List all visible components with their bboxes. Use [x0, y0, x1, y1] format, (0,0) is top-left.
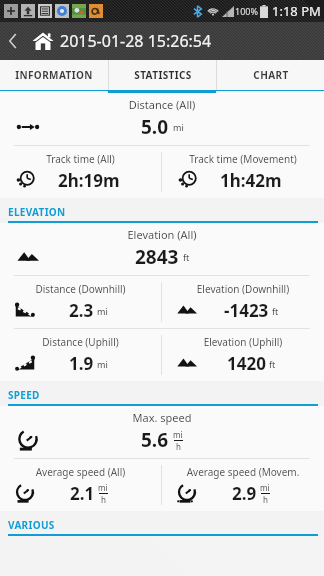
staticText: Distance (Uphill)	[0, 335, 161, 349]
staticText: mi	[260, 482, 270, 493]
button[interactable]: Elevation (Downhill)	[162, 276, 324, 328]
button[interactable]: Elevation (All)	[0, 223, 324, 275]
staticText: ft	[183, 251, 190, 263]
staticText: 2843	[135, 244, 179, 270]
staticText: ft	[272, 305, 279, 317]
staticText: mi	[173, 121, 184, 133]
staticText: 5.6	[141, 427, 169, 453]
staticText: CHART	[253, 68, 289, 82]
staticText: -1423	[224, 299, 269, 322]
staticText: Track time (Movement)	[162, 152, 324, 166]
staticText: VARIOUS	[8, 518, 55, 532]
staticText: INFORMATION	[15, 68, 93, 82]
button[interactable]: CHART	[217, 60, 324, 90]
button[interactable]: Max. speed	[0, 406, 324, 458]
staticText: 2.1	[70, 482, 95, 505]
staticText: 1420	[227, 352, 266, 375]
staticText: 1h:42m	[220, 169, 282, 192]
button[interactable]: Back	[0, 22, 26, 60]
button[interactable]: Distance (All)	[0, 93, 324, 145]
staticText: mi	[98, 482, 108, 493]
staticText: 2015-01-28 15:26:54	[60, 30, 212, 52]
button[interactable]: Average speed (All)	[0, 459, 161, 511]
staticText: 2.9	[232, 482, 257, 505]
staticText: h	[263, 494, 268, 505]
staticText: ft	[269, 358, 276, 370]
staticText: Elevation (Uphill)	[162, 335, 324, 349]
staticText: mi	[97, 305, 108, 317]
staticText: mi	[97, 358, 108, 370]
staticText: ELEVATION	[8, 205, 66, 219]
button[interactable]: Distance (Uphill)	[0, 329, 161, 381]
staticText: 1.9	[69, 352, 94, 375]
staticText: Distance (Downhill)	[0, 282, 161, 296]
staticText: Track time (All)	[0, 152, 161, 166]
staticText: h	[176, 441, 181, 452]
staticText: 2.3	[69, 299, 94, 322]
staticText: mi	[173, 429, 183, 440]
button[interactable]: Track time (All)	[0, 146, 161, 198]
button[interactable]: INFORMATION	[0, 60, 108, 90]
button[interactable]: Average speed (Movem.	[162, 459, 324, 511]
staticText: Max. speed	[0, 410, 324, 425]
staticText: Elevation (Downhill)	[162, 282, 324, 296]
staticText: 2h:19m	[58, 169, 120, 192]
staticText: STATISTICS	[134, 68, 192, 82]
staticText: 5.0	[141, 114, 169, 140]
staticText: 1:18 PM	[272, 2, 321, 20]
button[interactable]: Elevation (Uphill)	[162, 329, 324, 381]
button[interactable]: Home	[26, 22, 60, 60]
button[interactable]: Track time (Movement)	[162, 146, 324, 198]
staticText: Average speed (Movem.	[162, 465, 324, 479]
staticText: h	[101, 494, 106, 505]
staticText: Elevation (All)	[0, 227, 324, 242]
button[interactable]: Distance (Downhill)	[0, 276, 161, 328]
staticText: 100%	[235, 5, 258, 17]
staticText: Distance (All)	[0, 97, 324, 112]
staticText: SPEED	[8, 388, 40, 402]
staticText: Average speed (All)	[0, 465, 161, 479]
button[interactable]: STATISTICS	[109, 60, 216, 90]
